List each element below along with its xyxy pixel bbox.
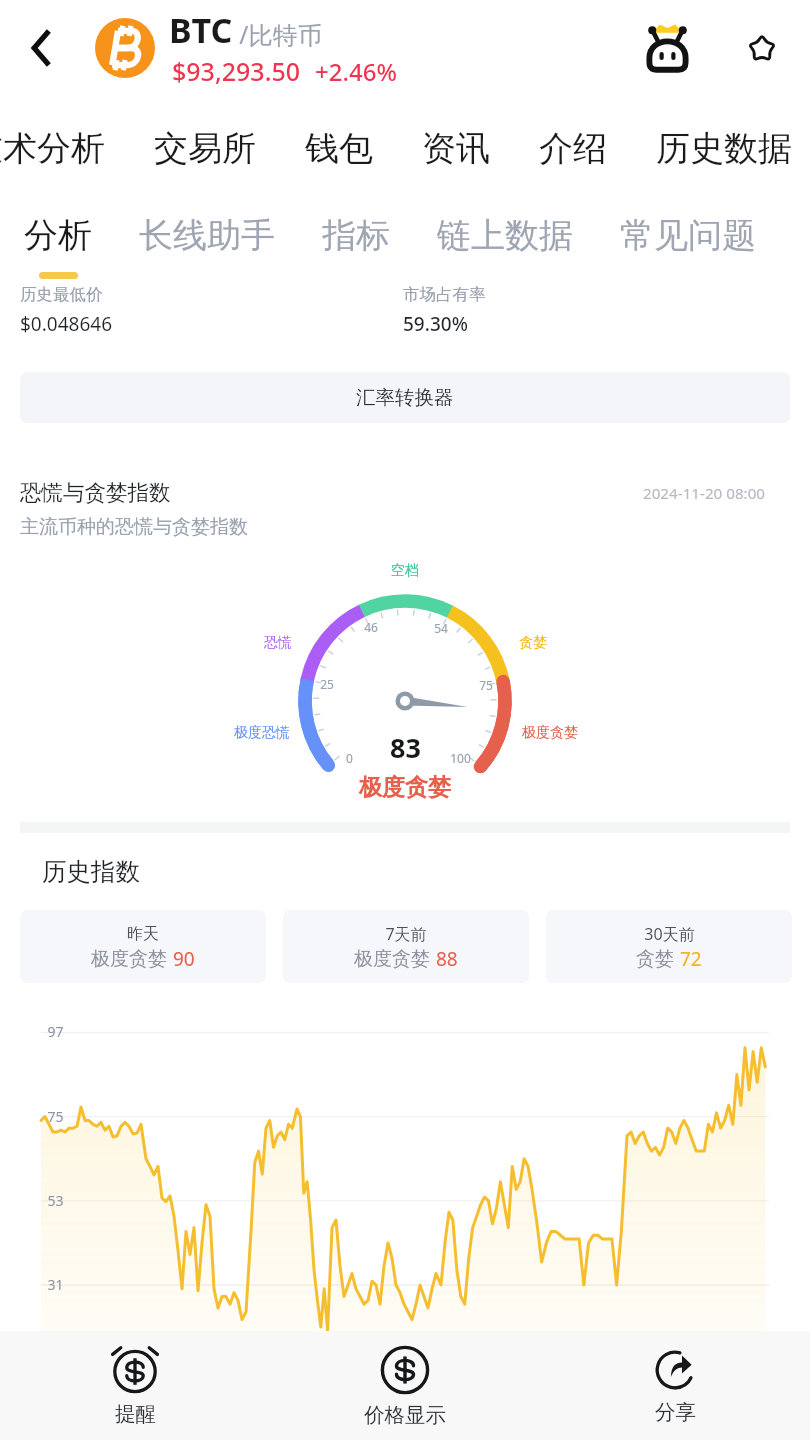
staticText: 介绍: [539, 127, 607, 170]
staticText: 100: [450, 750, 471, 766]
staticText: 恐慌与贪婪指数: [20, 479, 171, 506]
staticText: 83: [390, 729, 421, 766]
button[interactable]: 交易所: [142, 110, 268, 186]
staticText: 恐慌: [264, 634, 292, 652]
staticText: 极度贪婪: [522, 724, 578, 742]
button[interactable]: 钱包: [293, 110, 385, 186]
button[interactable]: 昨天: [20, 910, 266, 983]
staticText: 97: [47, 1022, 64, 1041]
staticText: 指标: [322, 214, 390, 257]
staticText: 历史指数: [42, 856, 140, 887]
staticText: 2024-11-20 08:00: [643, 483, 766, 504]
staticText: 极度贪婪: [354, 947, 430, 971]
staticText: 极度恐慌: [234, 724, 290, 742]
button[interactable]: 7天前: [283, 910, 529, 983]
staticText: 极度贪婪: [91, 947, 167, 971]
staticText: +2.46%: [315, 55, 397, 88]
staticText: 25: [320, 676, 334, 692]
button[interactable]: 长线助手: [127, 200, 287, 270]
staticText: 88: [436, 946, 458, 972]
staticText: 历史最低价: [20, 284, 103, 305]
staticText: 31: [47, 1275, 64, 1294]
button[interactable]: 分析: [12, 200, 104, 270]
staticText: 资讯: [422, 127, 490, 170]
staticText: 72: [680, 946, 702, 972]
staticText: BTC: [169, 7, 233, 53]
button[interactable]: 常见问题: [608, 200, 768, 270]
staticText: 53: [47, 1191, 64, 1210]
staticText: $93,293.50: [172, 54, 301, 88]
staticText: 分析: [24, 214, 92, 257]
button[interactable]: 指标: [310, 200, 402, 270]
staticText: $0.048646: [20, 311, 113, 337]
staticText: 交易所: [154, 127, 256, 170]
staticText: 46: [364, 619, 378, 635]
staticText: 7天前: [385, 923, 427, 945]
button[interactable]: 链上数据: [425, 200, 585, 270]
staticText: 长线助手: [139, 214, 275, 257]
staticText: 极度贪婪: [359, 773, 451, 802]
button[interactable]: Back: [0, 0, 82, 96]
staticText: 历史数据: [656, 127, 792, 170]
button[interactable]: Add to favourites: [718, 4, 806, 92]
staticText: 分享: [655, 1399, 696, 1425]
staticText: 链上数据: [437, 214, 573, 257]
staticText: 汇率转换器: [356, 385, 454, 410]
staticText: 54: [434, 620, 448, 636]
button[interactable]: 价格显示: [270, 1331, 540, 1440]
button[interactable]: 提醒: [0, 1331, 270, 1440]
button[interactable]: AI assistant: [623, 4, 711, 92]
button[interactable]: 汇率转换器: [20, 372, 790, 423]
staticText: 常见问题: [620, 214, 756, 257]
staticText: 90: [173, 946, 195, 972]
staticText: 空档: [391, 562, 419, 580]
staticText: 市场占有率: [403, 284, 486, 305]
button[interactable]: 历史数据: [644, 110, 804, 186]
staticText: 技术分析: [0, 127, 105, 170]
button[interactable]: 技术分析: [0, 110, 117, 186]
staticText: 30天前: [644, 923, 695, 945]
button[interactable]: 介绍: [527, 110, 619, 186]
staticText: 0: [346, 750, 353, 766]
staticText: 75: [479, 677, 493, 693]
staticText: 贪婪: [519, 634, 547, 652]
staticText: 价格显示: [364, 1402, 446, 1428]
staticText: 主流币种的恐慌与贪婪指数: [20, 515, 248, 539]
staticText: 昨天: [127, 924, 159, 944]
staticText: 提醒: [115, 1401, 156, 1427]
button[interactable]: 30天前: [546, 910, 792, 983]
button[interactable]: 资讯: [410, 110, 502, 186]
staticText: 75: [47, 1107, 64, 1126]
staticText: 钱包: [305, 127, 373, 170]
staticText: /比特币: [233, 18, 322, 51]
staticText: 59.30%: [403, 311, 468, 337]
staticText: 贪婪: [636, 947, 674, 971]
button[interactable]: 分享: [540, 1331, 810, 1440]
